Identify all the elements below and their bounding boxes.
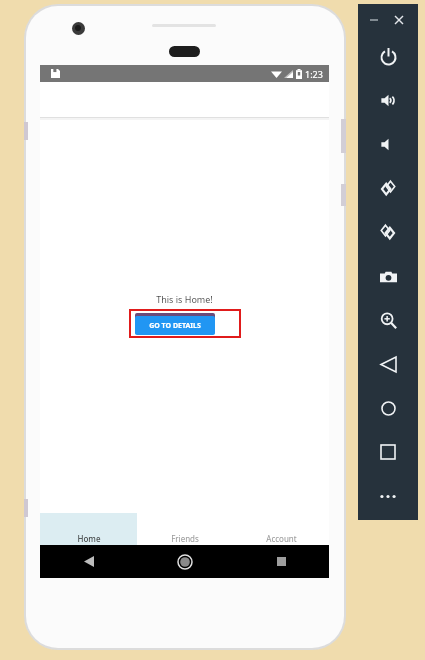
staticText: 1:23 bbox=[305, 68, 323, 80]
button[interactable]: Rotate right bbox=[372, 216, 404, 248]
button[interactable]: Account bbox=[233, 513, 329, 545]
button[interactable]: Power bbox=[372, 40, 404, 72]
staticText: Friends bbox=[171, 533, 199, 544]
button[interactable]: Minimize bbox=[366, 12, 382, 28]
button[interactable]: Zoom bbox=[372, 304, 404, 336]
button[interactable]: More bbox=[372, 480, 404, 512]
staticText: GO TO DETAILS bbox=[149, 321, 201, 331]
button[interactable]: GO TO DETAILS bbox=[135, 316, 215, 335]
button[interactable]: Volume up bbox=[372, 84, 404, 116]
staticText: Account bbox=[266, 533, 297, 544]
button[interactable]: Friends bbox=[137, 513, 233, 545]
button[interactable]: Home bbox=[137, 545, 233, 578]
staticText: Home bbox=[77, 533, 101, 544]
staticText: This is Home! bbox=[156, 293, 213, 305]
button[interactable]: Back bbox=[372, 348, 404, 380]
button[interactable]: Home bbox=[40, 513, 137, 545]
button[interactable]: Recent apps bbox=[233, 545, 329, 578]
button[interactable]: Take screenshot bbox=[372, 260, 404, 292]
button[interactable]: Home bbox=[372, 392, 404, 424]
button[interactable]: Rotate left bbox=[372, 172, 404, 204]
button[interactable]: Back bbox=[40, 545, 137, 578]
button[interactable]: Volume down bbox=[372, 128, 404, 160]
button[interactable]: Close bbox=[391, 12, 407, 28]
button[interactable]: Overview bbox=[372, 436, 404, 468]
